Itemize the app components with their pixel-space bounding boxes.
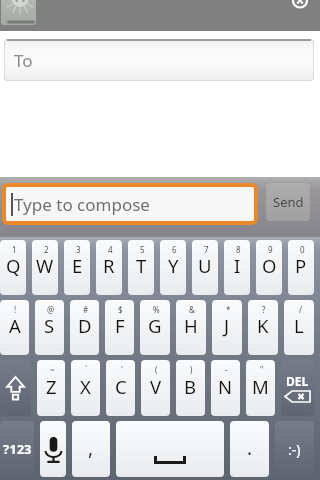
staticText: E (72, 253, 83, 278)
button[interactable]: & (176, 300, 206, 355)
button[interactable]: 5 (128, 240, 154, 295)
button[interactable]: 3 (64, 240, 90, 295)
staticText: # (83, 304, 89, 315)
staticText: 9 (268, 244, 273, 255)
staticText: H (184, 313, 198, 338)
staticText: , (88, 435, 94, 461)
staticText: 7 (204, 244, 209, 255)
staticText: . (247, 435, 253, 461)
staticText: U (198, 253, 212, 278)
button[interactable]: ( (141, 360, 170, 416)
button[interactable]: ! (0, 300, 29, 355)
staticText: 5 (140, 244, 145, 255)
staticText: V (150, 374, 162, 399)
button[interactable]: Close (292, 0, 308, 9)
staticText: S (44, 313, 55, 338)
button[interactable]: ' (106, 360, 135, 416)
button[interactable]: Voice input (40, 421, 66, 477)
staticText: Send (273, 193, 304, 211)
button[interactable]: " (246, 360, 275, 416)
staticText: J (224, 313, 230, 338)
button[interactable]: Comma (72, 421, 110, 477)
button[interactable]: 8 (224, 240, 250, 295)
staticText: & (189, 304, 195, 315)
staticText: ! (14, 304, 17, 315)
staticText: Y (168, 253, 179, 278)
staticText: 8 (236, 244, 241, 255)
button[interactable]: Symbols (0, 421, 34, 477)
staticText: ?123 (3, 440, 32, 458)
button[interactable]: Space (116, 421, 224, 477)
button[interactable]: Choose contact (1, 0, 36, 25)
staticText: T (136, 253, 147, 278)
staticText: P (295, 253, 307, 278)
button[interactable]: Delete (281, 360, 314, 416)
staticText: 6 (172, 244, 177, 255)
button[interactable]: 0 (288, 240, 314, 295)
staticText: Type to compose (14, 193, 150, 216)
button[interactable]: To (4, 39, 314, 81)
staticText: ~ (50, 364, 55, 375)
button[interactable]: 2 (32, 240, 58, 295)
staticText: L (294, 313, 304, 338)
button[interactable]: / (284, 300, 314, 355)
button[interactable]: Send (266, 183, 310, 221)
staticText: W (36, 253, 54, 278)
button[interactable]: - (211, 360, 240, 416)
staticText: ? (262, 304, 266, 315)
button[interactable]: % (140, 300, 170, 355)
button[interactable]: ~ (37, 360, 65, 416)
button[interactable]: ) (176, 360, 205, 416)
staticText: / (299, 304, 302, 315)
staticText: :-) (288, 440, 301, 459)
staticText: 3 (76, 244, 81, 255)
button[interactable]: * (212, 300, 242, 355)
staticText: N (218, 374, 233, 399)
button[interactable]: 6 (160, 240, 186, 295)
button[interactable]: Type to compose (6, 187, 254, 221)
staticText: D (78, 313, 92, 338)
button[interactable]: Shift (0, 360, 31, 416)
staticText: R (103, 253, 115, 278)
staticText: Z (46, 374, 57, 399)
staticText: C (115, 374, 127, 399)
button[interactable]: 9 (256, 240, 282, 295)
button[interactable]: 1 (0, 240, 26, 295)
staticText: M (252, 374, 269, 399)
button[interactable]: ` (71, 360, 100, 416)
button[interactable]: @ (35, 300, 64, 355)
staticText: F (115, 313, 125, 338)
staticText: ( (155, 364, 158, 375)
staticText: DEL (286, 373, 309, 389)
button[interactable]: $ (105, 300, 134, 355)
staticText: A (9, 313, 21, 338)
staticText: ' (121, 364, 123, 375)
staticText: I (234, 253, 241, 278)
staticText: To (14, 49, 33, 72)
staticText: * (226, 304, 231, 315)
staticText: 0 (300, 244, 305, 255)
staticText: ` (85, 364, 88, 375)
staticText: 2 (44, 244, 49, 255)
staticText: 1 (12, 244, 17, 255)
button[interactable]: ? (248, 300, 278, 355)
staticText: B (184, 374, 197, 399)
button[interactable]: Period (230, 421, 269, 477)
button[interactable]: # (70, 300, 99, 355)
button[interactable]: 4 (96, 240, 122, 295)
staticText: X (80, 374, 91, 399)
button[interactable]: 7 (192, 240, 218, 295)
staticText: " (260, 364, 264, 375)
staticText: ) (190, 364, 193, 375)
staticText: - (225, 364, 228, 375)
button[interactable]: Emoticon (275, 421, 314, 477)
staticText: 4 (108, 244, 113, 255)
staticText: % (153, 304, 160, 315)
staticText: @ (47, 304, 55, 315)
staticText: K (257, 313, 269, 338)
staticText: G (148, 313, 162, 338)
staticText: $ (118, 304, 123, 315)
staticText: O (262, 253, 277, 278)
staticText: Q (6, 253, 21, 278)
